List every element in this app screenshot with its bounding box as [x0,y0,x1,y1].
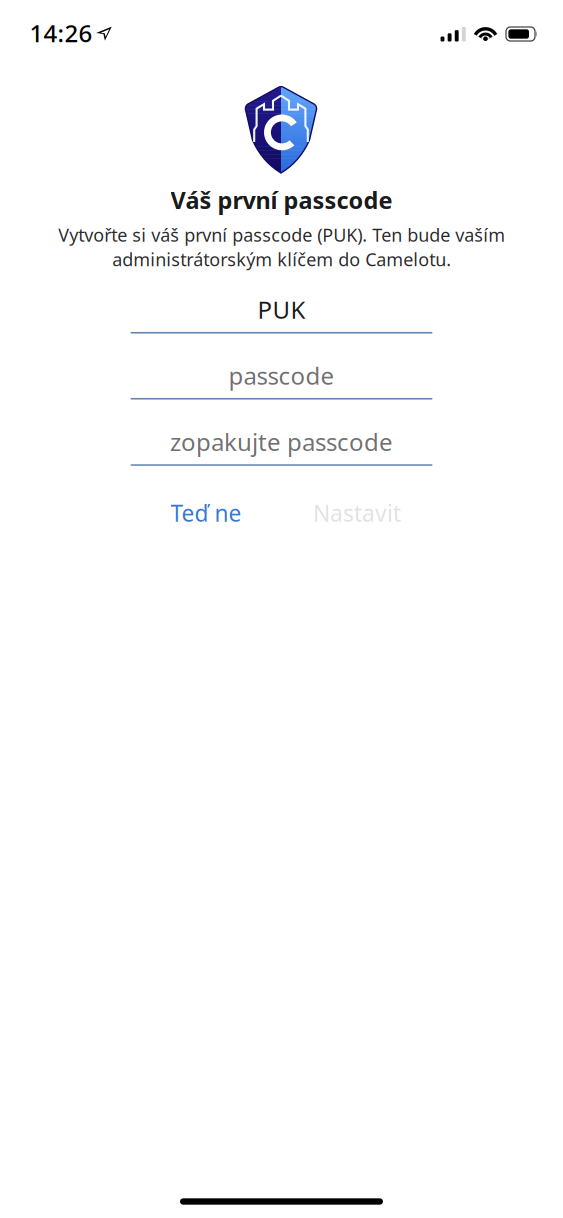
staticText: passcode [228,359,334,391]
staticText: Vytvořte si váš první passcode (PUK). Te… [58,222,505,271]
staticText: Váš první passcode [170,184,392,216]
staticText: 14:26 [29,17,92,49]
button[interactable]: Nastavit [281,491,432,535]
button[interactable]: PUK [130,293,432,333]
staticText: Nastavit [313,498,401,528]
staticText: zopakujte passcode [170,426,393,458]
staticText: PUK [257,293,305,325]
button[interactable]: zopakujte passcode [130,426,432,466]
button[interactable]: passcode [130,359,432,399]
button[interactable]: Teď ne [130,491,281,535]
staticText: Teď ne [170,498,241,528]
